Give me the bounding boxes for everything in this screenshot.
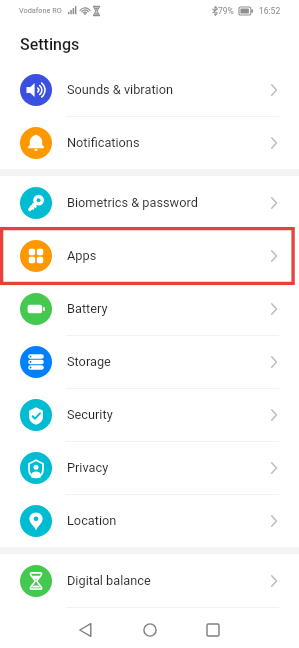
- staticText: Privacy: [67, 460, 109, 475]
- staticText: Location: [67, 513, 117, 528]
- staticText: Battery: [67, 301, 108, 316]
- button[interactable]: Location: [0, 494, 299, 547]
- staticText: 16:52: [259, 6, 281, 16]
- button[interactable]: Biometrics & password: [0, 176, 299, 229]
- button[interactable]: Home: [138, 618, 162, 642]
- button[interactable]: Digital balance: [0, 554, 299, 607]
- staticText: Storage: [67, 354, 111, 369]
- button[interactable]: Notifications: [0, 116, 299, 169]
- button[interactable]: Security: [0, 388, 299, 441]
- staticText: Biometrics & password: [67, 195, 198, 210]
- button[interactable]: Recents: [201, 618, 225, 642]
- button[interactable]: Apps: [0, 229, 299, 282]
- staticText: Apps: [67, 248, 97, 263]
- button[interactable]: Battery: [0, 282, 299, 335]
- button[interactable]: Storage: [0, 335, 299, 388]
- staticText: Sounds & vibration: [67, 82, 173, 97]
- staticText: 79%: [218, 6, 234, 16]
- staticText: Digital balance: [67, 573, 151, 588]
- button[interactable]: Privacy: [0, 441, 299, 494]
- staticText: Vodafone RO: [19, 6, 62, 15]
- staticText: Notifications: [67, 135, 140, 150]
- staticText: Settings: [20, 35, 80, 54]
- button[interactable]: Back: [74, 618, 98, 642]
- staticText: Security: [67, 407, 113, 422]
- button[interactable]: Sounds & vibration: [0, 63, 299, 116]
